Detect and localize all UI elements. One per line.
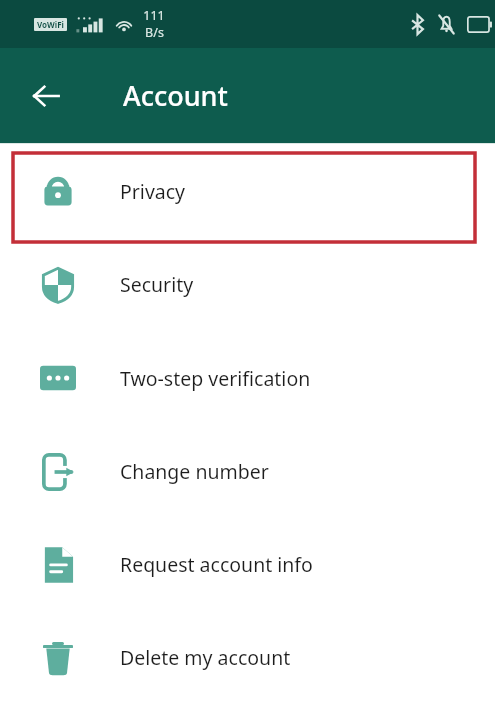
staticText: B/s: [145, 24, 164, 41]
button[interactable]: Privacy: [0, 144, 495, 238]
button[interactable]: Security: [0, 238, 495, 331]
button[interactable]: Back: [22, 72, 70, 120]
staticText: Request account info: [120, 551, 313, 578]
button[interactable]: Delete my account: [0, 611, 495, 704]
staticText: Privacy: [120, 178, 186, 205]
staticText: Delete my account: [120, 644, 291, 671]
staticText: Change number: [120, 458, 269, 485]
staticText: Security: [120, 271, 194, 298]
staticText: Account: [123, 77, 228, 114]
button[interactable]: Request account info: [0, 518, 495, 611]
staticText: VoWiFi: [37, 19, 64, 30]
staticText: 111: [143, 7, 165, 24]
button[interactable]: Two-step verification: [0, 331, 495, 425]
button[interactable]: Change number: [0, 425, 495, 518]
staticText: Two-step verification: [120, 365, 311, 392]
